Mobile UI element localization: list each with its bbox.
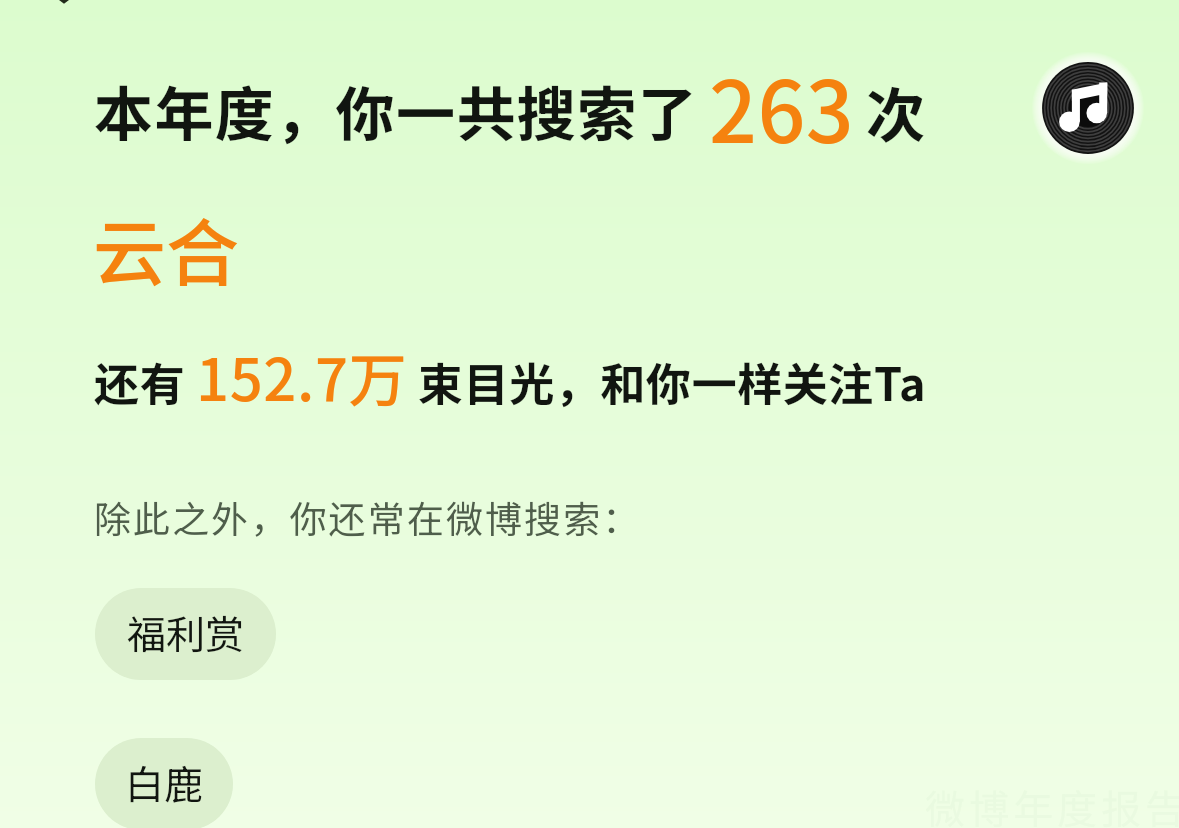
staticText: 云合: [93, 195, 239, 301]
button[interactable]: Music: [1032, 52, 1144, 164]
button[interactable]: 白鹿: [95, 738, 233, 828]
staticText: 福利赏: [127, 604, 245, 660]
staticText: 还有 152.7万 束目光，和你一样关注Ta: [94, 334, 927, 418]
staticText: 次: [866, 69, 926, 154]
staticText: 白鹿: [125, 754, 204, 810]
staticText: 除此之外，你还常在微博搜索：: [94, 490, 642, 544]
button[interactable]: 福利赏: [95, 588, 276, 680]
staticText: 263: [709, 46, 855, 168]
button[interactable]: Back: [47, 0, 81, 20]
staticText: 本年度，你一共搜索了: [94, 68, 699, 153]
